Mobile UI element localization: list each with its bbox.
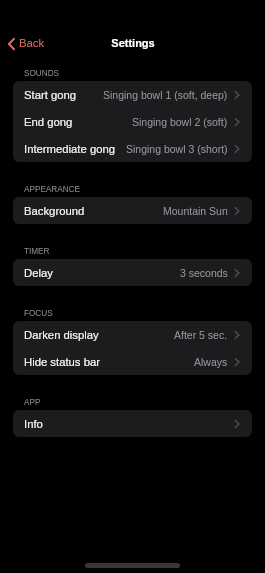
staticText: Intermediate gong xyxy=(24,143,116,156)
staticText: Info xyxy=(24,418,43,431)
staticText: Back xyxy=(19,37,45,50)
staticText: TIMER xyxy=(24,247,50,256)
staticText: FOCUS xyxy=(24,309,53,318)
button[interactable]: Darken display xyxy=(13,321,252,348)
staticText: Always xyxy=(194,356,228,368)
staticText: Delay xyxy=(24,267,53,280)
staticText: Hide status bar xyxy=(24,356,100,369)
button[interactable]: Hide status bar xyxy=(13,348,252,375)
button[interactable]: Intermediate gong xyxy=(13,135,252,162)
staticText: End gong xyxy=(24,116,73,129)
staticText: APPEARANCE xyxy=(24,185,80,194)
staticText: Singing bowl 2 (soft) xyxy=(132,116,228,128)
button[interactable]: Info xyxy=(13,410,252,437)
staticText: Background xyxy=(24,205,85,218)
button[interactable]: End gong xyxy=(13,108,252,135)
staticText: Start gong xyxy=(24,89,77,102)
button[interactable]: Background xyxy=(13,197,252,224)
staticText: Darken display xyxy=(24,329,99,342)
button[interactable]: Back xyxy=(0,35,53,52)
staticText: Singing bowl 1 (soft, deep) xyxy=(103,89,228,101)
button[interactable]: Start gong xyxy=(13,81,252,108)
staticText: Mountain Sun xyxy=(163,205,228,217)
staticText: 3 seconds xyxy=(180,267,228,279)
staticText: SOUNDS xyxy=(24,69,60,78)
button[interactable]: Delay xyxy=(13,259,252,286)
staticText: Singing bowl 3 (short) xyxy=(126,143,228,155)
other: Back xyxy=(8,38,15,50)
staticText: Settings xyxy=(111,37,155,49)
staticText: APP xyxy=(24,398,41,407)
staticText: After 5 sec. xyxy=(174,329,228,341)
